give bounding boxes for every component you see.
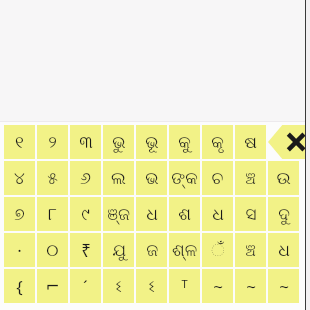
staticText: · xyxy=(17,239,22,262)
staticText: ଷ xyxy=(244,134,257,151)
staticText: ଁ xyxy=(211,242,225,259)
staticText: କୁ xyxy=(178,134,191,151)
staticText: ୮ xyxy=(48,206,57,223)
staticText: ୫ xyxy=(47,170,58,187)
button[interactable]: ଯୁ xyxy=(103,233,134,267)
staticText: ୧ xyxy=(15,134,24,151)
staticText: ଞ୍ଜ xyxy=(107,206,130,223)
button[interactable]: ~ xyxy=(202,269,233,303)
button[interactable]: · xyxy=(4,233,35,267)
staticText: ଞ୍ଚ xyxy=(245,170,256,187)
staticText: ଧ xyxy=(278,242,290,259)
button[interactable]: ୨ xyxy=(37,125,68,159)
button[interactable]: ଁ xyxy=(202,233,233,267)
staticText: ˊ xyxy=(83,275,88,298)
staticText: ~ xyxy=(213,275,223,298)
staticText: ଲ xyxy=(111,170,126,187)
button[interactable]: ୩ xyxy=(70,125,101,159)
button[interactable]: ଭୂ xyxy=(136,125,167,159)
button[interactable]: ଧ xyxy=(268,233,299,267)
staticText: ଧ xyxy=(212,206,224,223)
button[interactable]: ଽ xyxy=(136,269,167,303)
staticText: ସ xyxy=(245,206,257,223)
staticText: ଽ xyxy=(115,278,122,295)
button[interactable]: ଙ୍କ xyxy=(169,161,200,195)
staticText: ୯ xyxy=(81,206,90,223)
button[interactable]: ୯ xyxy=(70,197,101,231)
staticText: କୃ xyxy=(211,134,224,151)
staticText: ୭ xyxy=(14,206,25,223)
staticText: ଶ xyxy=(178,206,191,223)
button[interactable]: ˊ xyxy=(70,269,101,303)
button[interactable]: ୮ xyxy=(37,197,68,231)
button[interactable]: ଭ xyxy=(136,161,167,195)
staticText: ~ xyxy=(246,275,256,298)
staticText: ଞ୍ଚ xyxy=(245,242,256,259)
button[interactable]: କୃ xyxy=(202,125,233,159)
button[interactable]: ଷ xyxy=(235,125,266,159)
button[interactable]: ଭୁ xyxy=(103,125,134,159)
staticText: ᵀ xyxy=(181,275,188,298)
button[interactable]: { xyxy=(4,269,35,303)
staticText: ଚ xyxy=(211,170,224,187)
staticText: { xyxy=(16,275,23,298)
button[interactable]: ଧ xyxy=(202,197,233,231)
button[interactable]: ଦୁ xyxy=(268,197,299,231)
button[interactable]: ଶ୍ଳ xyxy=(169,233,200,267)
button[interactable]: ୦ xyxy=(37,233,68,267)
button[interactable]: ସ xyxy=(235,197,266,231)
button[interactable]: Close keyboard xyxy=(268,125,310,159)
button[interactable]: କୁ xyxy=(169,125,200,159)
staticText: ଜ xyxy=(146,242,158,259)
staticText: ୩ xyxy=(79,134,93,151)
staticText: ୦ xyxy=(46,242,59,259)
staticText: ଭ xyxy=(145,170,159,187)
button[interactable]: ୬ xyxy=(70,161,101,195)
staticText: ୬ xyxy=(80,170,91,187)
button[interactable]: ୧ xyxy=(4,125,35,159)
button[interactable]: ୫ xyxy=(37,161,68,195)
button[interactable]: ₹ xyxy=(70,233,101,267)
button[interactable]: ଧ xyxy=(136,197,167,231)
staticText: ⌐ xyxy=(45,276,60,296)
button[interactable]: ଜ xyxy=(136,233,167,267)
button[interactable]: ଽ xyxy=(103,269,134,303)
staticText: ₹ xyxy=(81,239,91,262)
staticText: ୪ xyxy=(14,170,25,187)
button[interactable]: ୪ xyxy=(4,161,35,195)
button[interactable]: ଶ xyxy=(169,197,200,231)
button[interactable]: ⌐ xyxy=(37,269,68,303)
button[interactable]: ~ xyxy=(268,269,299,303)
staticText: ଭୁ xyxy=(112,134,126,151)
staticText: ଶ୍ଳ xyxy=(172,242,197,259)
staticText: ଙ୍କ xyxy=(171,170,198,187)
button[interactable]: ଲ xyxy=(103,161,134,195)
staticText: ଯୁ xyxy=(112,242,126,259)
staticText: ଦୁ xyxy=(278,206,290,223)
button[interactable]: ଞ୍ଚ xyxy=(235,161,266,195)
staticText: ୨ xyxy=(48,134,57,151)
button[interactable]: ଉ xyxy=(268,161,299,195)
staticText: ~ xyxy=(279,275,289,298)
staticText: ଽ xyxy=(148,278,155,295)
button[interactable]: ଚ xyxy=(202,161,233,195)
button[interactable]: ~ xyxy=(235,269,266,303)
button[interactable]: ୭ xyxy=(4,197,35,231)
button[interactable]: ଞ୍ଚ xyxy=(235,233,266,267)
button[interactable]: ᵀ xyxy=(169,269,200,303)
staticText: ଧ xyxy=(146,206,158,223)
staticText: ଉ xyxy=(276,170,291,187)
staticText: ଭୂ xyxy=(145,134,159,151)
button[interactable]: ଞ୍ଜ xyxy=(103,197,134,231)
